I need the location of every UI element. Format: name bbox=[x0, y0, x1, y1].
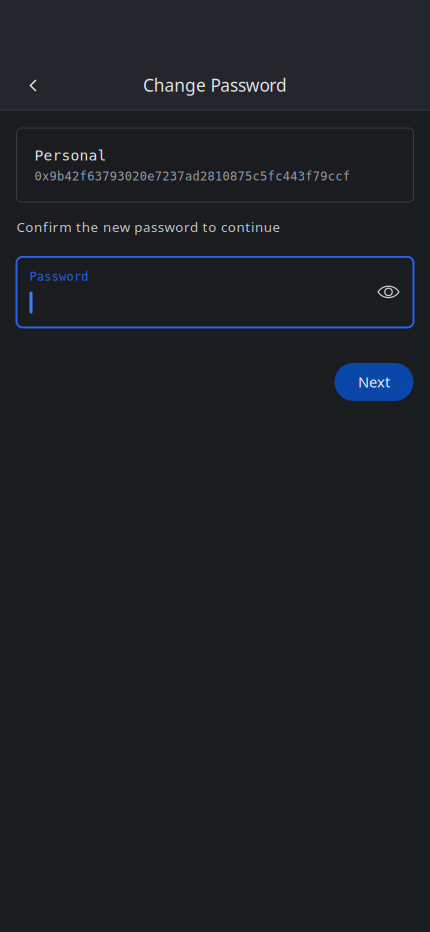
staticText: Next bbox=[358, 372, 390, 392]
button[interactable]: Next bbox=[334, 363, 413, 401]
button[interactable]: Back bbox=[11, 63, 55, 107]
staticText: Personal bbox=[34, 147, 106, 164]
button[interactable]: Show password bbox=[371, 275, 405, 309]
staticText: 0x9b42f63793020e7237ad2810875c5fc443f79c… bbox=[34, 170, 350, 183]
staticText: Confirm the new password to continue bbox=[16, 218, 280, 236]
staticText: Change Password bbox=[143, 73, 287, 96]
staticText: Password bbox=[29, 270, 88, 283]
